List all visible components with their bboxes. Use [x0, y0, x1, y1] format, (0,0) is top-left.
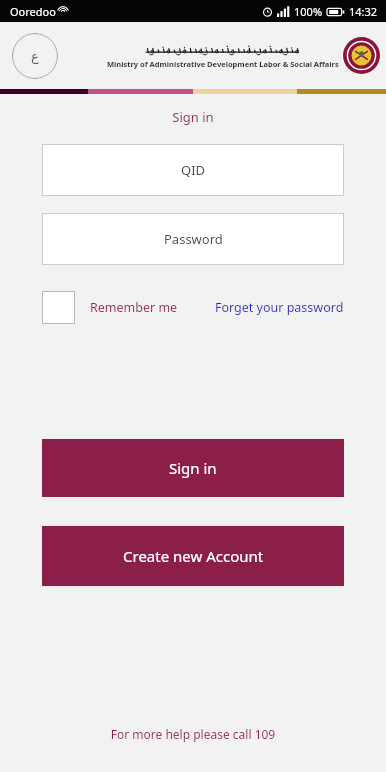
button[interactable]: For more help please call 109: [0, 726, 386, 772]
staticText: Remember me: [90, 299, 178, 316]
staticText: 14:32: [349, 4, 378, 19]
staticText: Password: [164, 230, 223, 248]
button[interactable]: Sign in: [42, 439, 344, 497]
staticText: Ooredoo: [10, 4, 56, 19]
button[interactable]: QID: [42, 144, 344, 196]
staticText: 100%: [294, 4, 323, 19]
button[interactable]: Remember me: [42, 291, 178, 324]
staticText: Sign in: [0, 108, 386, 126]
button[interactable]: Password: [42, 213, 344, 265]
staticText: QID: [181, 161, 206, 179]
staticText: Ministry of Administrative Development L…: [107, 59, 339, 69]
staticText: ع: [31, 49, 39, 64]
staticText: Create new Account: [123, 546, 264, 566]
button[interactable]: Forget your password: [215, 299, 344, 316]
staticText: Sign in: [169, 458, 217, 478]
button[interactable]: Create new Account: [42, 526, 344, 586]
button[interactable]: Switch language to Arabic: [12, 33, 58, 79]
